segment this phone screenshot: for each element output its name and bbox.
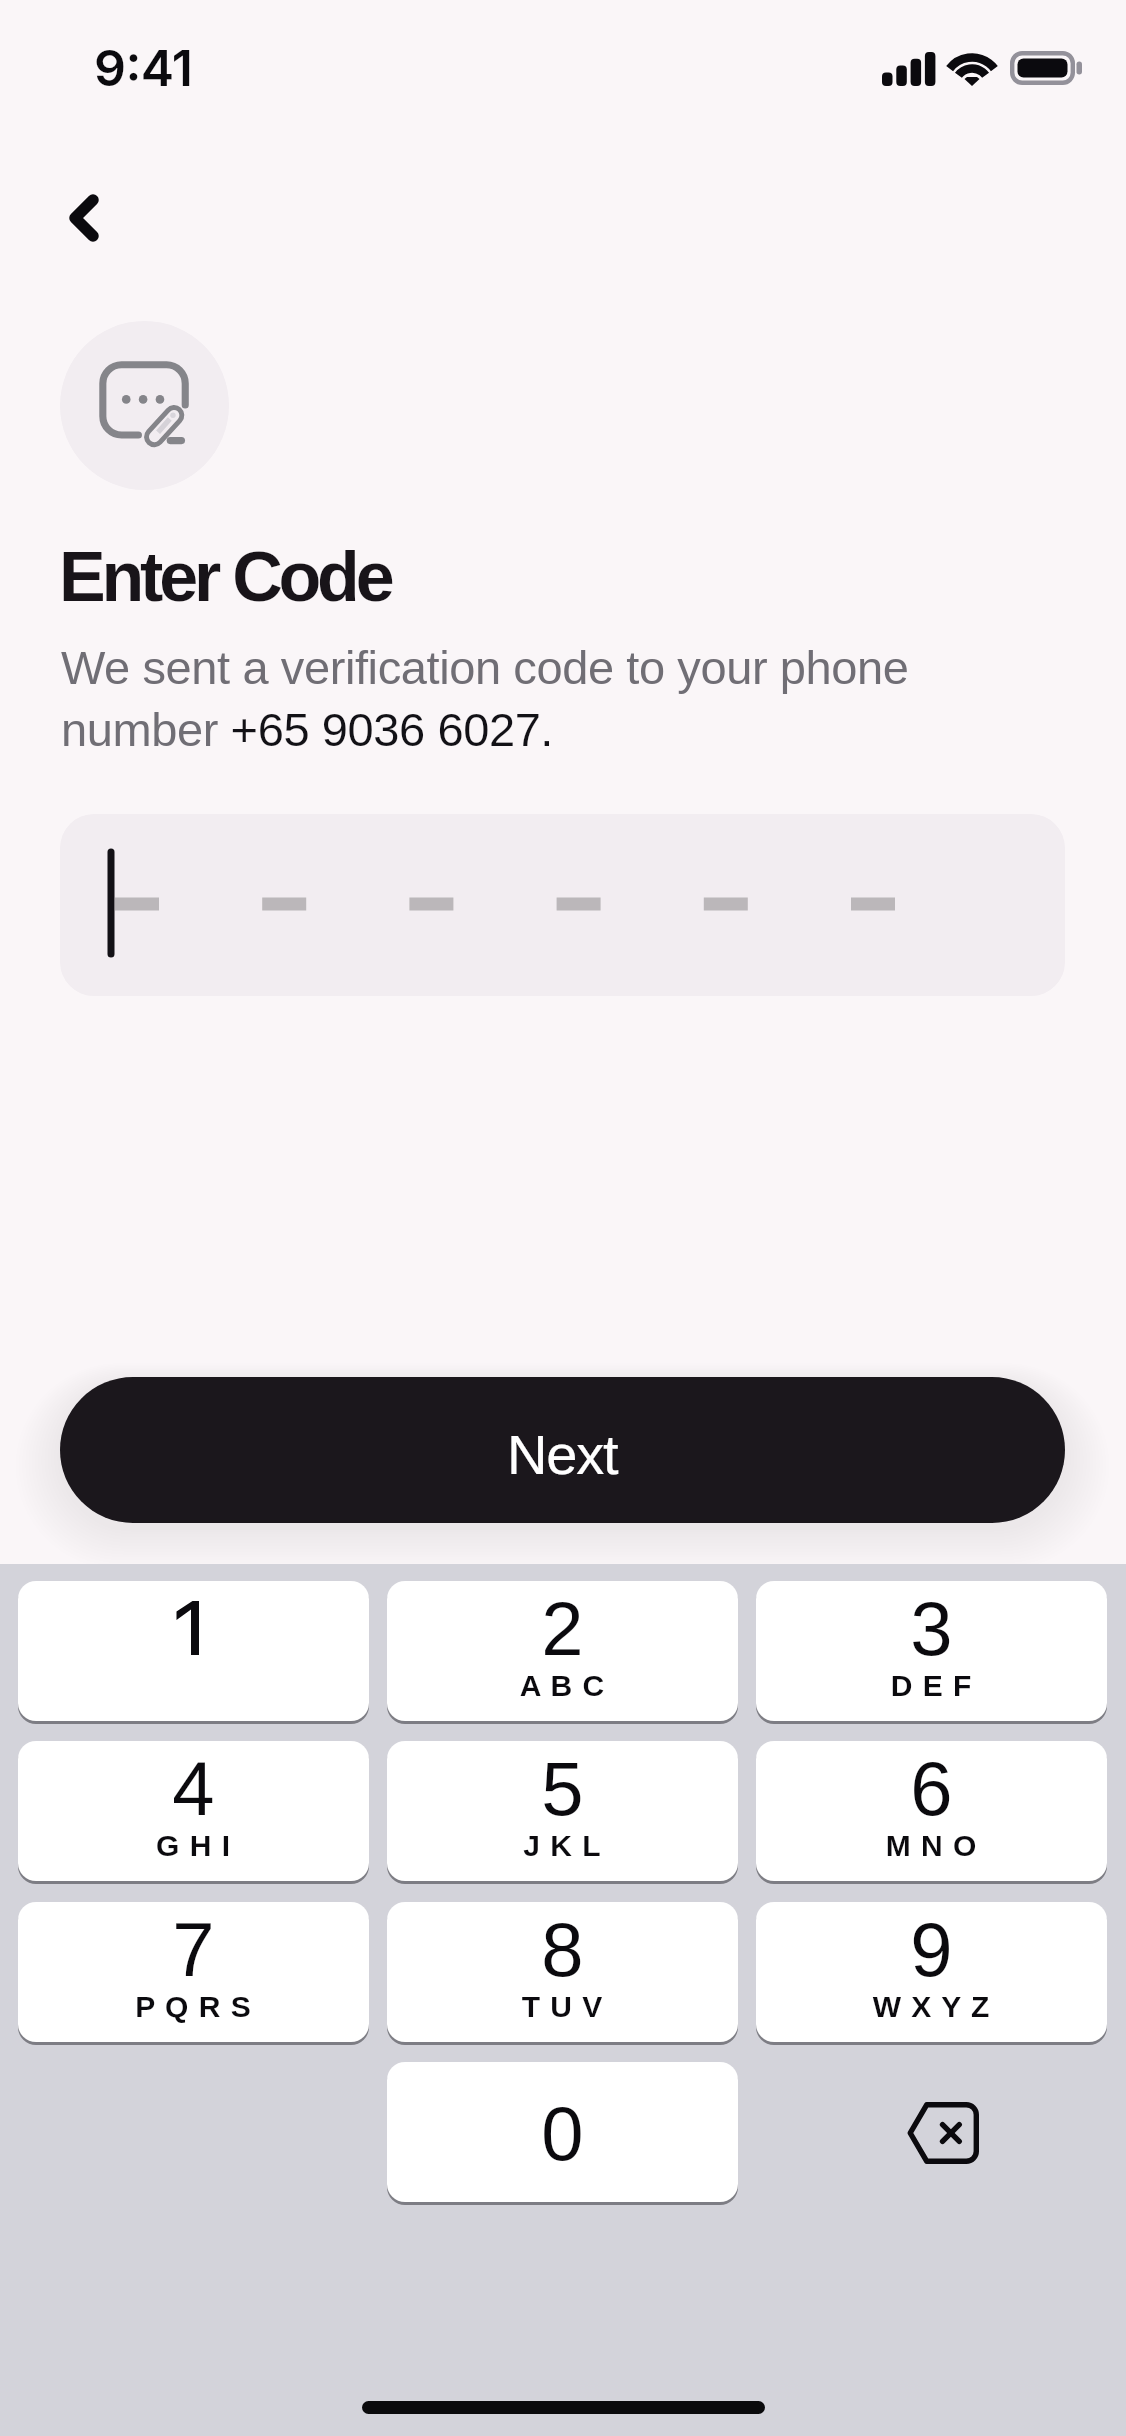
staticText: Next bbox=[507, 1423, 618, 1486]
button[interactable]: 4 bbox=[18, 1741, 369, 1881]
staticText: M N O bbox=[756, 1829, 1107, 1863]
staticText: 8 bbox=[387, 1907, 738, 1992]
staticText: W X Y Z bbox=[756, 1990, 1107, 2024]
staticText: A B C bbox=[387, 1669, 738, 1703]
button[interactable]: Next bbox=[60, 1377, 1065, 1523]
staticText: 0 bbox=[387, 2091, 738, 2176]
staticText: Enter Code bbox=[59, 538, 391, 616]
button[interactable]: 9 bbox=[756, 1902, 1107, 2042]
staticText: 7 bbox=[18, 1907, 369, 1992]
button[interactable]: 5 bbox=[387, 1741, 738, 1881]
button[interactable]: 1 bbox=[18, 1581, 369, 1721]
staticText: 9 bbox=[756, 1907, 1107, 1992]
staticText: 4 bbox=[18, 1746, 369, 1831]
button[interactable]: 0 bbox=[387, 2062, 738, 2202]
staticText: G H I bbox=[18, 1829, 369, 1863]
staticText: 6 bbox=[756, 1746, 1107, 1831]
button[interactable]: 7 bbox=[18, 1902, 369, 2042]
staticText: T U V bbox=[387, 1990, 738, 2024]
button[interactable]: 6 bbox=[756, 1741, 1107, 1881]
staticText: J K L bbox=[387, 1829, 738, 1863]
staticText: 9:41 bbox=[94, 38, 193, 98]
button[interactable]: 8 bbox=[387, 1902, 738, 2042]
staticText: 3 bbox=[756, 1586, 1107, 1671]
staticText: 5 bbox=[387, 1746, 738, 1831]
button[interactable]: 2 bbox=[387, 1581, 738, 1721]
staticText: D E F bbox=[756, 1669, 1107, 1703]
staticText: 2 bbox=[387, 1586, 738, 1671]
staticText: P Q R S bbox=[18, 1990, 369, 2024]
button[interactable]: Delete bbox=[756, 2062, 1107, 2202]
staticText: We sent a verification code to your phon… bbox=[61, 641, 1001, 756]
button[interactable]: Back bbox=[40, 174, 128, 262]
button[interactable]: 3 bbox=[756, 1581, 1107, 1721]
button[interactable] bbox=[60, 814, 1065, 996]
